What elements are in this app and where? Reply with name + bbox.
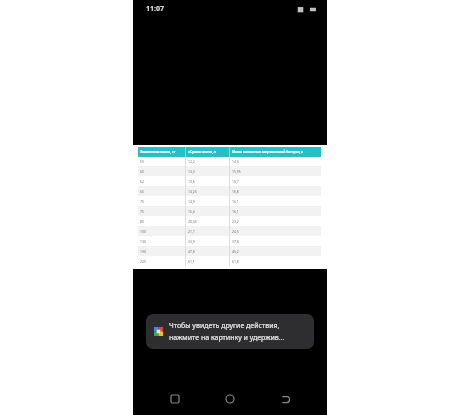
button[interactable]: 62: [138, 176, 321, 186]
staticText: 225: [140, 259, 146, 264]
staticText: 15,95: [232, 169, 241, 174]
staticText: 16,1: [232, 199, 239, 204]
staticText: 130: [140, 239, 146, 244]
staticText: 80: [140, 219, 144, 224]
staticText: 21,7: [188, 229, 195, 234]
staticText: 61,1: [188, 259, 195, 264]
button[interactable]: Home: [217, 386, 243, 412]
staticText: нажмите на картинку и удержив…: [169, 333, 285, 343]
staticText: 12,2: [188, 159, 195, 164]
staticText: 11:07: [146, 4, 164, 14]
staticText: 13,6: [188, 179, 195, 184]
staticText: 60: [140, 169, 144, 174]
button[interactable]: 55: [138, 157, 321, 166]
staticText: 62: [140, 179, 144, 184]
staticText: 37,8: [232, 239, 239, 244]
button[interactable]: 75: [138, 206, 321, 216]
staticText: «Сухая» масса, л: [188, 150, 216, 154]
staticText: 20,45: [188, 219, 197, 224]
staticText: 14,6: [232, 159, 239, 164]
staticText: 13,3: [188, 169, 195, 174]
staticText: 55: [140, 159, 144, 164]
staticText: 16,8: [232, 189, 239, 194]
staticText: 61,8: [232, 259, 239, 264]
staticText: Масса полностью заправленной батареи, л: [232, 150, 304, 154]
staticText: 100: [140, 229, 146, 234]
staticText: Заявленная масса, кг: [140, 150, 176, 154]
staticText: 24,5: [232, 229, 239, 234]
button[interactable]: 60: [138, 166, 321, 176]
staticText: 14,25: [188, 189, 197, 194]
button[interactable]: Back: [272, 386, 298, 412]
button[interactable]: 100: [138, 226, 321, 236]
staticText: 70: [140, 199, 144, 204]
staticText: 15,7: [232, 179, 239, 184]
staticText: 47,8: [188, 249, 195, 254]
staticText: 23,2: [232, 219, 239, 224]
staticText: Чтобы увидеть другие действия,: [169, 321, 280, 331]
staticText: 15,4: [188, 209, 195, 214]
button[interactable]: 70: [138, 196, 321, 206]
staticText: 46,2: [232, 249, 239, 254]
staticText: 75: [140, 209, 144, 214]
button[interactable]: 65: [138, 186, 321, 196]
button[interactable]: 130: [138, 236, 321, 246]
staticText: 65: [140, 189, 144, 194]
button[interactable]: Чтобы увидеть другие действия,: [146, 314, 314, 349]
staticText: 14,9: [188, 199, 195, 204]
button[interactable]: 190: [138, 246, 321, 256]
staticText: 33,9: [188, 239, 195, 244]
staticText: 190: [140, 249, 146, 254]
button[interactable]: 225: [138, 256, 321, 266]
staticText: 16,1: [232, 209, 239, 214]
button[interactable]: Заявленная масса, кг: [138, 147, 321, 157]
button[interactable]: 80: [138, 216, 321, 226]
button[interactable]: Recents: [162, 386, 188, 412]
